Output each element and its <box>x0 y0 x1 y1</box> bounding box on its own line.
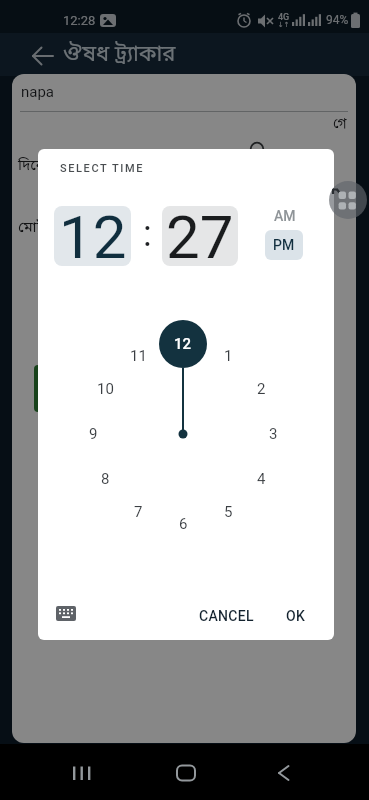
staticText: PM <box>273 237 295 253</box>
button[interactable] <box>276 765 292 781</box>
staticText: দিনে কতবার? <box>18 156 101 176</box>
button[interactable] <box>71 766 95 782</box>
staticText: CANCEL <box>199 608 254 624</box>
button[interactable] <box>329 181 367 219</box>
staticText: AM <box>274 208 296 224</box>
button[interactable] <box>176 765 196 781</box>
staticText: 27 <box>166 206 234 262</box>
button[interactable] <box>32 45 54 67</box>
staticText: SELECT TIME <box>60 162 145 175</box>
button[interactable]: 12 <box>54 206 131 266</box>
staticText: ঔষধ ট্র্যাকার <box>63 41 176 70</box>
staticText: 12 <box>59 206 127 262</box>
staticText: : <box>143 213 152 255</box>
staticText: 4 <box>257 470 266 488</box>
staticText: 7 <box>134 503 143 521</box>
button[interactable]: PM <box>265 230 303 260</box>
button[interactable]: OK <box>271 601 321 630</box>
staticText: 9 <box>89 425 98 443</box>
staticText: 1 <box>224 347 233 365</box>
button[interactable] <box>34 365 330 412</box>
staticText: 10 <box>97 380 114 398</box>
staticText: 8 <box>101 470 110 488</box>
staticText: 11 <box>130 347 147 365</box>
staticText: মোট কত দিন? <box>18 218 105 238</box>
button[interactable]: CANCEL <box>186 601 266 630</box>
staticText: 3 <box>269 425 278 443</box>
button[interactable] <box>56 606 76 621</box>
staticText: 2 <box>257 380 266 398</box>
staticText: 4G <box>278 12 290 23</box>
staticText: 94% <box>326 13 349 27</box>
staticText: 12:28 <box>63 13 96 28</box>
button[interactable]: 27 <box>162 206 238 266</box>
staticText: napa <box>21 83 55 101</box>
button[interactable]: AM <box>265 205 305 226</box>
staticText: OK <box>286 608 306 624</box>
staticText: ↓↑ <box>278 21 290 29</box>
staticText: 12 <box>174 335 192 353</box>
staticText: 6 <box>179 515 188 533</box>
staticText: 5 <box>224 503 233 521</box>
staticText: গে <box>333 115 347 134</box>
